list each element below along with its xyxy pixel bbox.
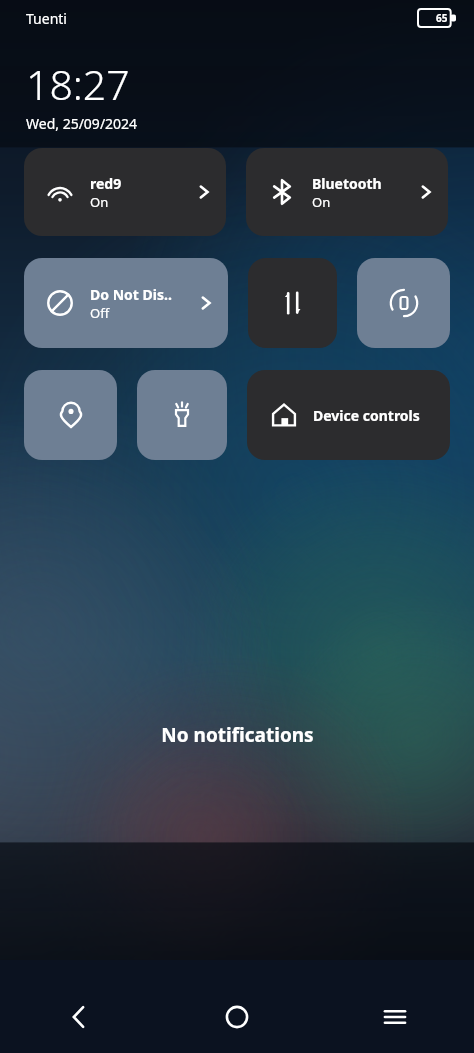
button[interactable]: Bluetooth [246, 148, 448, 236]
staticText: On [312, 193, 331, 211]
staticText: Tuenti [26, 9, 67, 28]
button[interactable]: Location [24, 370, 117, 460]
staticText: Bluetooth [312, 174, 382, 193]
staticText: red9 [90, 174, 122, 193]
staticText: No notifications [161, 722, 314, 748]
staticText: Do Not Dis.. [90, 285, 172, 304]
button[interactable]: Flashlight [137, 370, 227, 460]
staticText: 65 [436, 11, 448, 25]
button[interactable]: red9 [24, 148, 226, 236]
button[interactable]: Auto rotate [357, 258, 450, 348]
button[interactable]: Back [0, 960, 158, 1053]
staticText: Off [90, 304, 110, 322]
staticText: Device controls [313, 406, 420, 425]
staticText: Wed, 25/09/2024 [26, 114, 138, 133]
button[interactable]: Device controls [247, 370, 450, 460]
button[interactable]: Do Not Dis.. [24, 258, 228, 348]
staticText: 18:27 [26, 56, 130, 112]
button[interactable]: Mobile data [248, 258, 337, 348]
button[interactable]: Home [158, 960, 316, 1053]
staticText: On [90, 193, 109, 211]
button[interactable]: Recent apps [316, 960, 474, 1053]
